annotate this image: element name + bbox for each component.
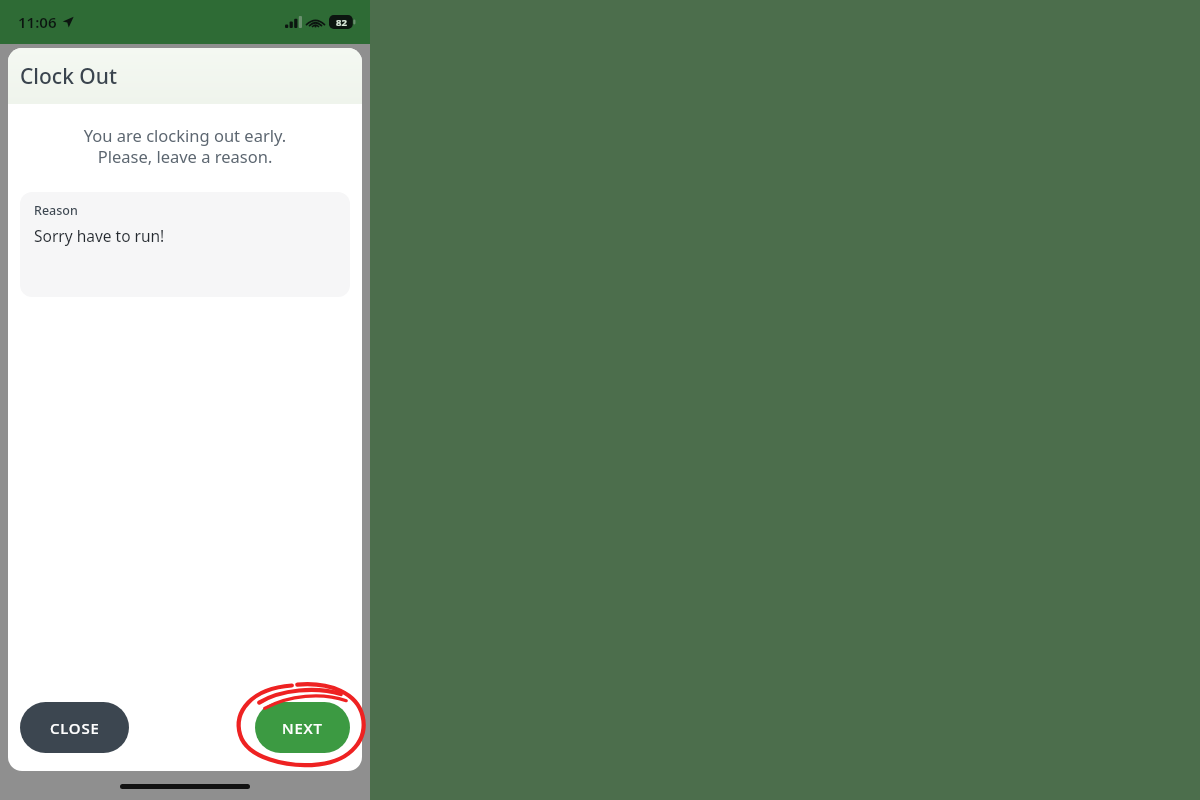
button[interactable]: CLOSE — [20, 702, 129, 753]
staticText: NEXT — [282, 718, 323, 738]
staticText: Sorry have to run! — [34, 225, 165, 246]
staticText: Clock Out — [20, 62, 118, 91]
staticText: 11:06 — [18, 12, 57, 32]
staticText: CLOSE — [50, 718, 100, 738]
staticText: You are clocking out early. Please, leav… — [24, 124, 346, 168]
button[interactable]: Reason — [20, 192, 350, 297]
button[interactable]: NEXT — [255, 702, 350, 753]
staticText: 82 — [336, 16, 347, 29]
staticText: Reason — [34, 202, 78, 219]
